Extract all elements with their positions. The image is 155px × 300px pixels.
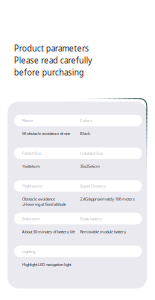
staticText: Black <box>80 131 90 136</box>
staticText: Name <box>22 118 33 123</box>
staticText: Signal Distance <box>80 183 106 189</box>
staticText: Unfolded Size <box>80 151 103 156</box>
staticText: Endurance <box>22 216 40 221</box>
staticText: Highlight LED navigation light <box>22 262 71 267</box>
staticText: Please read carefully <box>14 55 92 66</box>
staticText: Product parameters <box>14 43 89 54</box>
staticText: Obstacle avoidance +Hovering at fixed al… <box>22 196 66 207</box>
staticText: Removable module battery <box>80 229 126 234</box>
staticText: About 30 minutes of battery life <box>22 229 75 234</box>
staticText: Flight assist <box>22 183 42 189</box>
staticText: Lighting <box>22 249 35 254</box>
staticText: 2.4G/approximately 100 meters <box>80 196 135 202</box>
staticText: 5K obstacle avoidance drone <box>22 131 70 136</box>
staticText: 35x25x6cm <box>80 164 100 169</box>
staticText: Folded Size <box>22 151 41 156</box>
staticText: Colors <box>80 118 92 123</box>
staticText: Body battery <box>80 216 102 221</box>
staticText: 15x8x6cm <box>22 164 40 169</box>
staticText: before purchasing <box>14 67 84 78</box>
